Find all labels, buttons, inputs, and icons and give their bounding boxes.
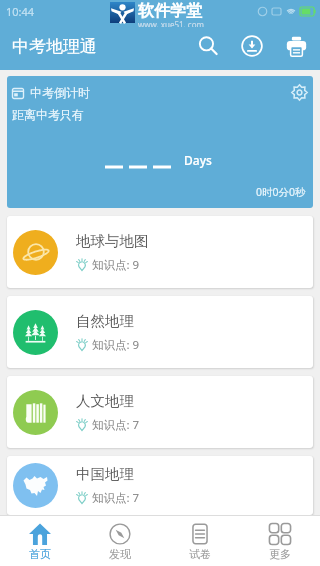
button[interactable]: 首页 <box>0 516 80 566</box>
staticText: 发现 <box>109 547 131 561</box>
staticText: 中国地理 <box>76 465 134 483</box>
staticText: 人文地理 <box>76 392 134 410</box>
staticText: 中考倒计时 <box>30 85 90 100</box>
button[interactable]: 中考倒计时 <box>7 76 313 208</box>
staticText: 中考地理通 <box>12 36 97 57</box>
button[interactable]: 中国地理 <box>7 456 313 515</box>
staticText: 距离中考只有 <box>12 107 84 122</box>
staticText: 首页 <box>29 547 51 561</box>
staticText: 10:44 <box>6 4 35 19</box>
staticText: 知识点: 7 <box>92 490 140 506</box>
button[interactable]: Print <box>274 24 318 68</box>
button[interactable]: 更多 <box>240 516 320 566</box>
button[interactable]: 试卷 <box>160 516 240 566</box>
staticText: 自然地理 <box>76 312 134 330</box>
staticText: 0时0分0秒 <box>256 185 306 199</box>
button[interactable]: Download <box>230 24 274 68</box>
button[interactable]: Search <box>186 24 230 68</box>
button[interactable]: 地球与地图 <box>7 216 313 288</box>
button[interactable]: 发现 <box>80 516 160 566</box>
staticText: Days <box>184 152 212 168</box>
staticText: 更多 <box>269 547 291 561</box>
staticText: 地球与地图 <box>76 232 149 250</box>
staticText: 知识点: 9 <box>92 337 140 353</box>
staticText: 软件学堂 <box>138 1 202 21</box>
button[interactable]: 人文地理 <box>7 376 313 448</box>
staticText: www. xue51. com <box>138 19 204 27</box>
button[interactable]: 自然地理 <box>7 296 313 368</box>
staticText: 试卷 <box>189 547 211 561</box>
staticText: 知识点: 7 <box>92 417 140 433</box>
button[interactable]: Settings <box>287 80 311 104</box>
staticText: 知识点: 9 <box>92 257 140 273</box>
